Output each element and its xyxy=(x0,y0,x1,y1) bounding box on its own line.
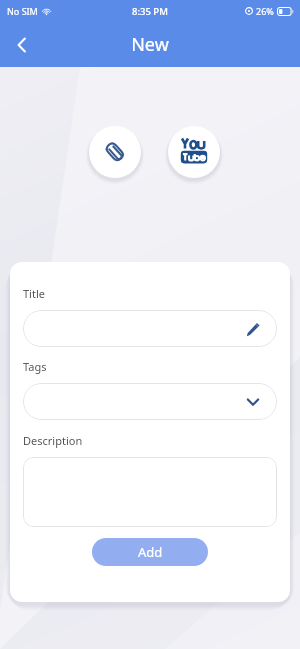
button[interactable]: Add xyxy=(92,538,208,566)
staticText: No SIM xyxy=(7,5,38,17)
staticText: Title xyxy=(23,286,45,301)
staticText: Tags xyxy=(23,359,47,374)
staticText: 8:35 PM xyxy=(132,5,168,18)
staticText: Description xyxy=(23,433,83,448)
button[interactable]: Edit title xyxy=(23,310,277,347)
button[interactable]: Attach file xyxy=(89,126,141,178)
staticText: Add xyxy=(138,543,163,561)
staticText: New xyxy=(131,32,169,57)
button[interactable]: Edit title xyxy=(242,319,262,339)
staticText: 26% xyxy=(256,5,274,17)
button[interactable]: Back xyxy=(0,23,44,67)
button[interactable]: Select tags xyxy=(23,383,277,420)
button[interactable]: Add YouTube video xyxy=(168,126,220,178)
button[interactable] xyxy=(23,457,277,527)
button[interactable]: Select tags xyxy=(243,392,263,412)
